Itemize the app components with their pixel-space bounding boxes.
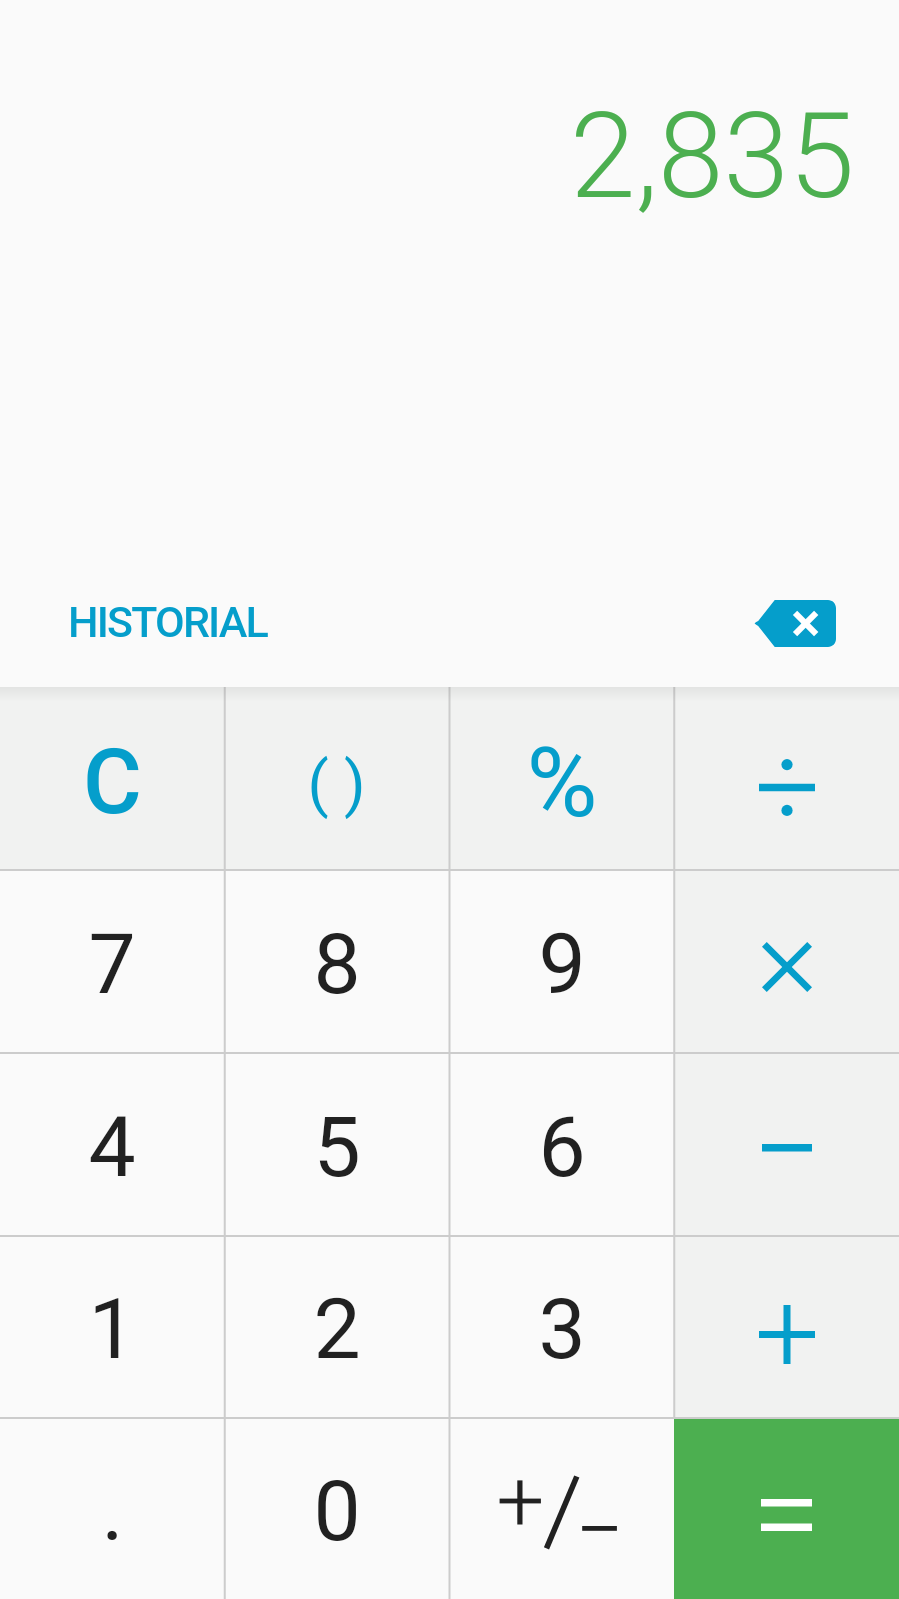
button[interactable]: ( ) (224, 687, 449, 870)
staticText: 2 (313, 1280, 361, 1378)
button[interactable]: Add (674, 1235, 899, 1417)
button[interactable]: 6 (449, 1052, 674, 1235)
staticText: HISTORIAL (68, 597, 267, 647)
staticText: 9 (538, 915, 586, 1013)
button[interactable]: Subtract (674, 1052, 899, 1235)
staticText: C (83, 730, 142, 835)
button[interactable]: % (449, 687, 674, 870)
button[interactable]: Equals (674, 1417, 899, 1599)
staticText: 6 (538, 1098, 586, 1196)
button[interactable]: 4 (0, 1052, 224, 1235)
button[interactable]: C (0, 687, 224, 870)
staticText: 1 (88, 1280, 136, 1378)
staticText: 2,835 (570, 88, 855, 226)
button[interactable]: Backspace (735, 580, 855, 666)
staticText: 5 (313, 1098, 361, 1196)
button[interactable]: 8 (224, 870, 449, 1052)
button[interactable]: Divide (674, 687, 899, 870)
button[interactable]: . (0, 1417, 224, 1599)
staticText: 4 (88, 1098, 136, 1196)
staticText: % (526, 726, 598, 840)
button[interactable]: 1 (0, 1235, 224, 1417)
staticText: 8 (313, 915, 361, 1013)
button[interactable]: 9 (449, 870, 674, 1052)
button[interactable]: 0 (224, 1417, 449, 1599)
button[interactable]: Multiply (674, 870, 899, 1052)
button[interactable]: 5 (224, 1052, 449, 1235)
staticText: . (101, 1462, 124, 1560)
button[interactable]: 3 (449, 1235, 674, 1417)
button[interactable]: HISTORIAL (44, 581, 291, 663)
staticText: 0 (313, 1462, 361, 1560)
button[interactable]: Plus minus (449, 1417, 674, 1599)
staticText: ( ) (307, 747, 366, 820)
button[interactable]: 2 (224, 1235, 449, 1417)
staticText: 7 (88, 915, 136, 1013)
staticText: 3 (538, 1280, 586, 1378)
button[interactable]: 7 (0, 870, 224, 1052)
